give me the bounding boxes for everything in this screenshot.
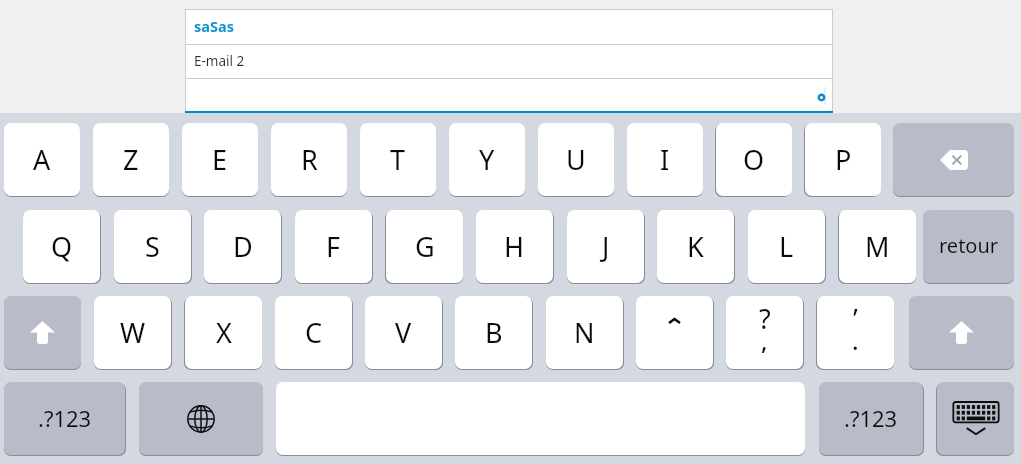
staticText: A [33,141,51,178]
button[interactable]: Shift [909,296,1014,369]
button[interactable]: saSas [185,9,833,44]
button[interactable]: U [538,123,614,196]
staticText: D [233,228,253,265]
button[interactable]: L [748,210,825,283]
staticText: F [326,228,341,265]
staticText: saSas [194,16,234,36]
button[interactable]: I [627,123,703,196]
button[interactable]: ’ [817,296,894,369]
staticText: Z [123,141,139,178]
staticText: C [305,314,323,351]
staticText: P [835,141,852,178]
button[interactable]: X [185,296,262,369]
staticText: Y [479,141,495,178]
staticText: . [852,324,859,357]
staticText: G [415,228,435,265]
button[interactable]: Circumflex accent [636,296,713,369]
staticText: O [743,141,765,178]
staticText: B [485,314,503,351]
button[interactable]: M [839,210,916,283]
staticText: J [602,228,610,265]
button[interactable]: K [657,210,734,283]
staticText: Q [51,228,73,265]
staticText: V [395,314,412,351]
staticText: E-mail 2 [194,52,245,70]
button[interactable] [185,78,833,113]
button[interactable]: Backspace [893,123,1014,196]
button[interactable]: P [805,123,881,196]
button[interactable]: Shift [4,296,81,369]
button[interactable]: G [386,210,463,283]
button[interactable]: .?123 [4,382,125,455]
staticText: X [216,314,232,351]
staticText: N [574,314,595,351]
staticText: U [566,141,586,178]
button[interactable]: ? [726,296,803,369]
staticText: H [504,228,525,265]
button[interactable]: S [114,210,191,283]
staticText: ? [759,300,771,337]
button[interactable]: D [204,210,281,283]
button[interactable]: V [365,296,442,369]
staticText: W [120,314,146,351]
button[interactable]: O [716,123,792,196]
staticText: S [145,228,160,265]
button[interactable]: H [476,210,553,283]
staticText: .?123 [844,403,898,433]
button[interactable]: Y [449,123,525,196]
button[interactable]: Hide keyboard [937,382,1014,455]
button[interactable]: Z [93,123,169,196]
staticText: ’ [853,300,858,337]
button[interactable]: N [546,296,623,369]
staticText: retour [939,232,999,259]
staticText: I [660,141,670,178]
staticText: M [865,228,890,265]
button[interactable]: E-mail 2 [185,44,833,79]
staticText: .?123 [38,403,92,433]
button[interactable]: A [4,123,80,196]
staticText: E [212,141,228,178]
staticText: , [761,324,768,357]
button[interactable]: B [455,296,532,369]
staticText: R [301,141,318,178]
button[interactable]: E [182,123,258,196]
button[interactable]: Q [23,210,100,283]
button[interactable]: W [94,296,171,369]
button[interactable]: F [295,210,372,283]
button[interactable]: .?123 [819,382,923,455]
button[interactable]: J [567,210,644,283]
button[interactable]: retour [923,210,1014,283]
staticText: T [390,141,406,178]
staticText: L [779,228,794,265]
button[interactable]: R [271,123,347,196]
button[interactable]: C [275,296,352,369]
staticText: K [687,228,704,265]
button[interactable]: Change keyboard language [139,382,263,455]
button[interactable]: T [360,123,436,196]
